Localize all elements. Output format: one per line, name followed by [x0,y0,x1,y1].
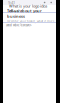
staticText: 9:41 [8,0,15,5]
staticText: Add more details [6,24,30,27]
staticText: Describe your brand, what it does and wh… [7,20,54,27]
staticText: What is your logo idea about? [9,3,47,14]
staticText: Tell us about your business [7,8,42,19]
